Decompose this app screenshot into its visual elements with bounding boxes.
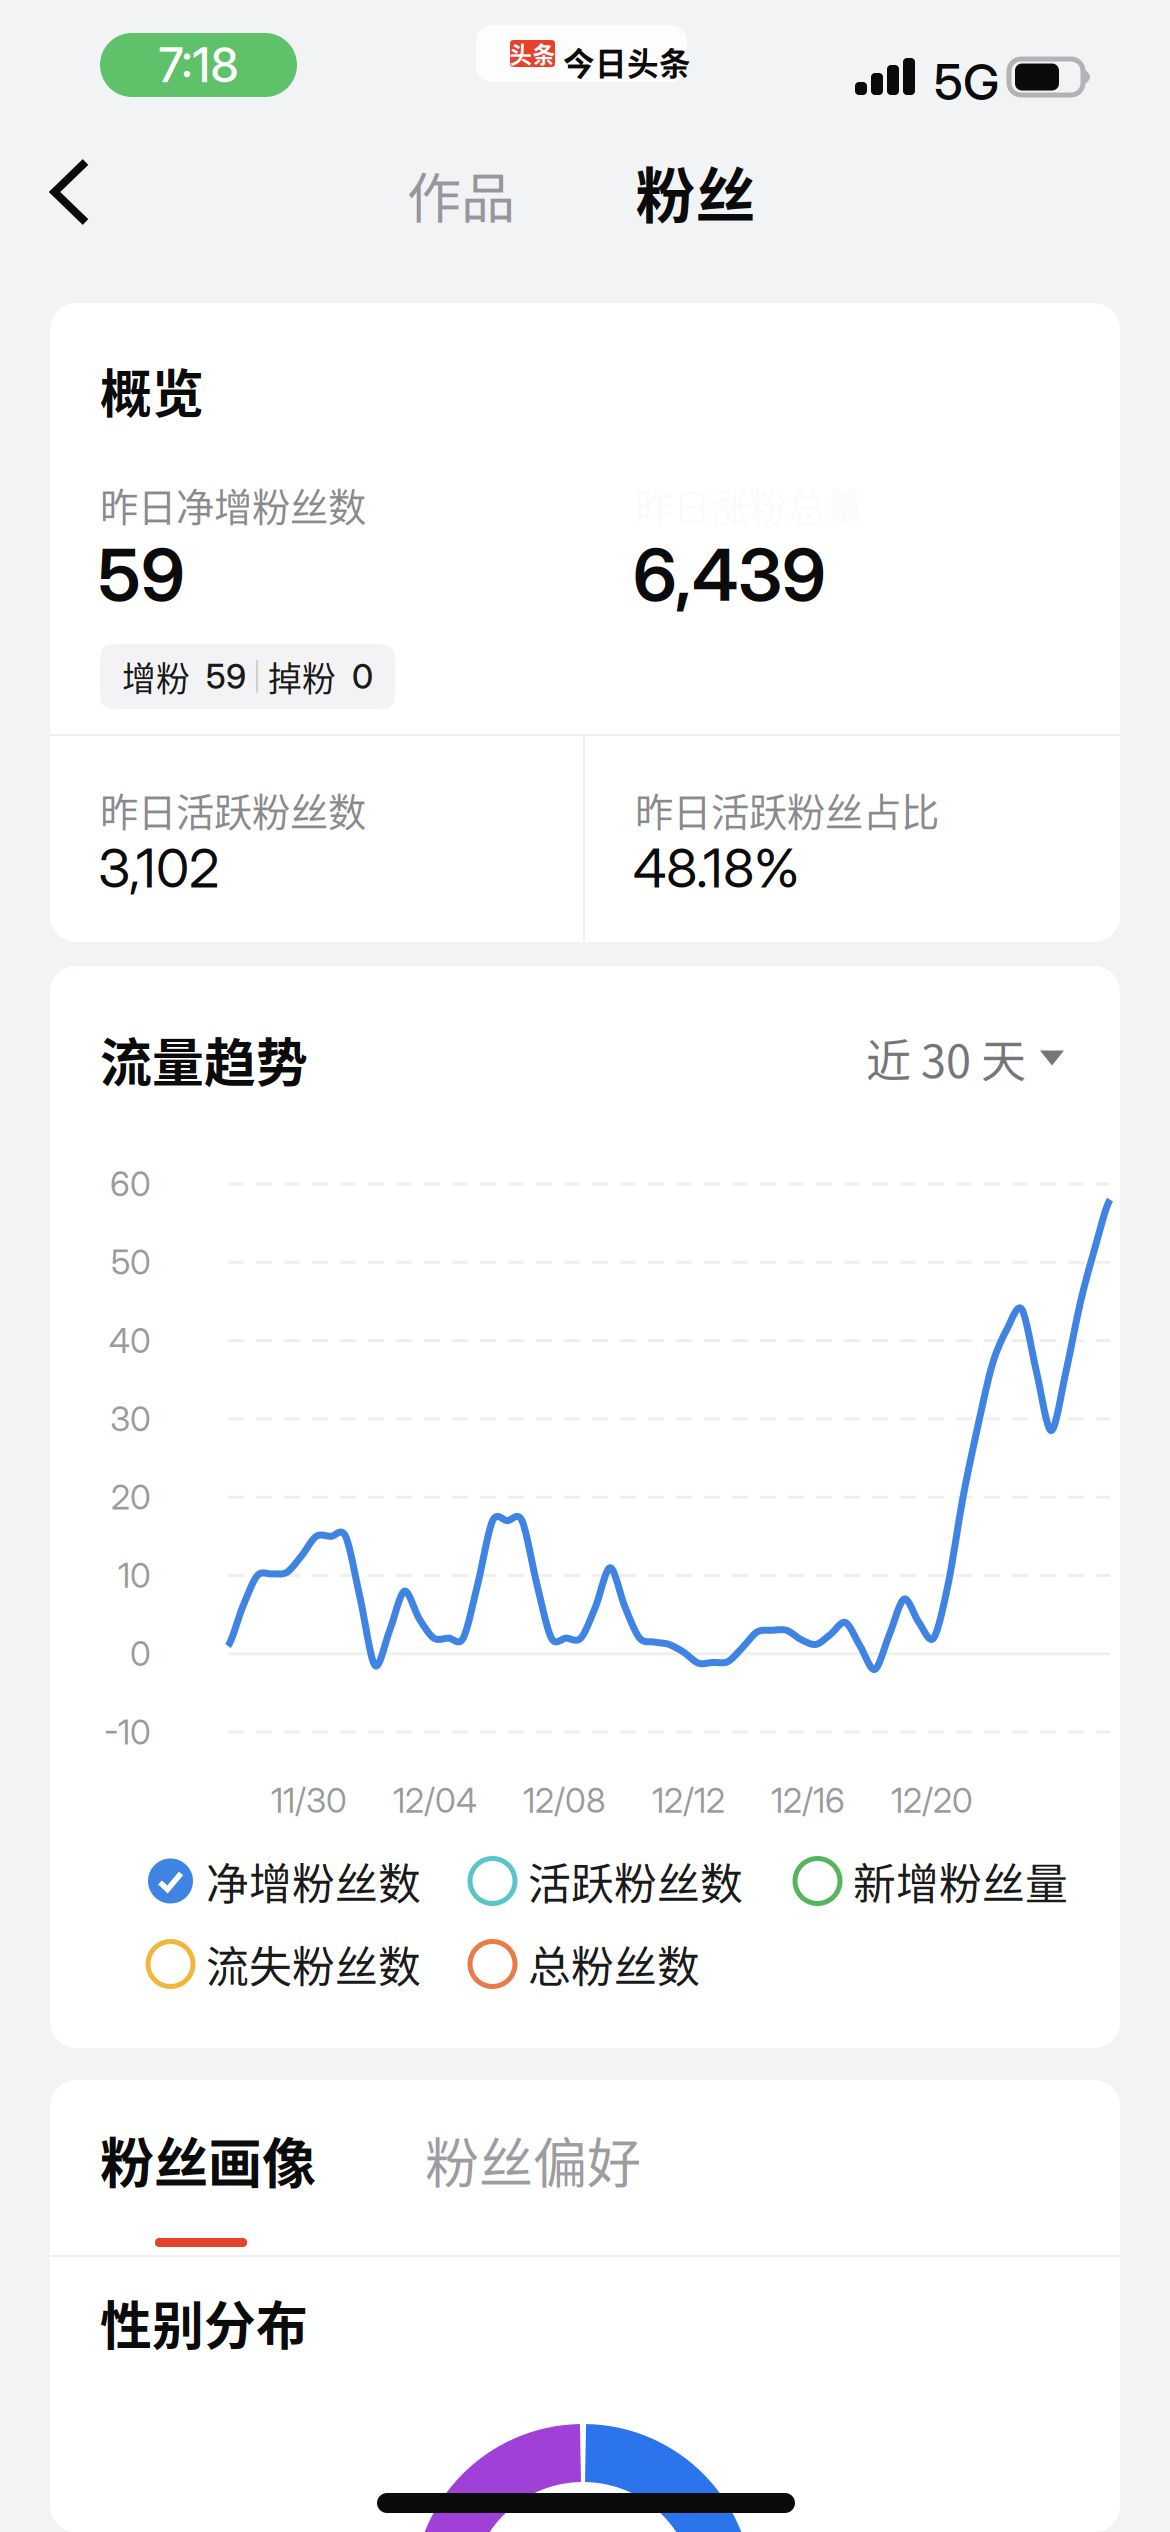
staticText: 6,439 xyxy=(633,531,826,618)
staticText: 5G xyxy=(934,52,999,112)
staticText: 活跃粉丝数 xyxy=(528,1850,743,1912)
button[interactable]: 作品 xyxy=(394,145,528,245)
button[interactable]: 净增粉丝数 xyxy=(148,1850,421,1912)
staticText: 30 xyxy=(110,1398,151,1439)
staticText: 昨日活跃粉丝数 xyxy=(100,782,366,837)
staticText: 今日头条 xyxy=(563,39,691,85)
staticText: 粉丝偏好 xyxy=(425,2121,641,2199)
staticText: -10 xyxy=(104,1712,151,1753)
staticText: 0 xyxy=(336,656,373,697)
staticText: 7:18 xyxy=(158,36,238,94)
button[interactable]: 活跃粉丝数 xyxy=(470,1850,743,1912)
staticText: 净增粉丝数 xyxy=(206,1850,421,1912)
staticText: | xyxy=(246,660,268,693)
staticText: 流量趋势 xyxy=(100,1022,308,1097)
button[interactable]: 粉丝画像 xyxy=(100,2120,350,2200)
staticText: 12/16 xyxy=(771,1780,845,1821)
staticText: 近 30 天 xyxy=(866,1025,1026,1091)
staticText: 0 xyxy=(130,1633,151,1674)
staticText: 60 xyxy=(110,1164,151,1204)
staticText: 59 xyxy=(190,656,246,697)
staticText: 头条 xyxy=(509,37,555,70)
staticText: 总粉丝数 xyxy=(528,1933,700,1995)
staticText: 作品 xyxy=(407,156,515,234)
staticText: 昨日净增粉丝数 xyxy=(100,477,366,532)
button[interactable]: 近 30 天 xyxy=(866,1028,1064,1088)
button[interactable]: 总粉丝数 xyxy=(470,1933,700,1995)
staticText: 40 xyxy=(109,1320,151,1361)
staticText: 59 xyxy=(98,531,185,618)
button[interactable]: 新增粉丝量 xyxy=(795,1850,1068,1912)
staticText: 3,102 xyxy=(98,835,219,900)
staticText: 掉粉 xyxy=(268,652,336,701)
staticText: 性别分布 xyxy=(100,2285,308,2360)
staticText: 增粉 xyxy=(122,652,190,701)
staticText: 新增粉丝量 xyxy=(853,1850,1068,1912)
staticText: 概览 xyxy=(100,353,204,428)
button[interactable]: 粉丝 xyxy=(620,142,771,242)
staticText: 粉丝画像 xyxy=(100,2121,316,2199)
button[interactable]: 流失粉丝数 xyxy=(148,1933,421,1995)
staticText: 48.18% xyxy=(633,835,800,900)
staticText: 20 xyxy=(111,1477,151,1518)
staticText: 50 xyxy=(111,1242,151,1283)
staticText: 10 xyxy=(118,1555,151,1596)
staticText: 12/12 xyxy=(652,1780,725,1821)
staticText: 流失粉丝数 xyxy=(206,1933,421,1995)
staticText: 11/30 xyxy=(271,1780,347,1821)
button[interactable]: 粉丝偏好 xyxy=(425,2120,675,2200)
staticText: 粉丝 xyxy=(635,149,755,235)
staticText: 12/04 xyxy=(393,1780,477,1821)
button[interactable]: Back xyxy=(20,142,120,242)
staticText: 昨日活跃粉丝占比 xyxy=(635,782,939,837)
staticText: 12/20 xyxy=(891,1780,973,1821)
staticText: 12/08 xyxy=(523,1780,606,1821)
